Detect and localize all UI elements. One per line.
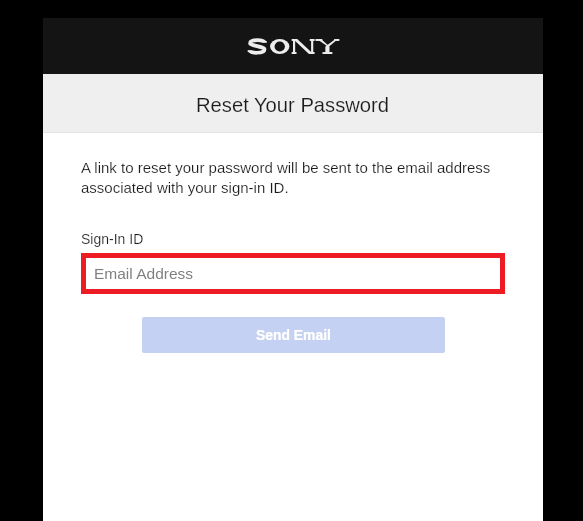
staticText: Send Email — [256, 327, 331, 343]
button[interactable]: Sony — [248, 39, 338, 54]
button[interactable]: Email Address — [86, 258, 500, 289]
button[interactable]: Send Email — [142, 317, 445, 353]
staticText: Sign-In ID — [81, 231, 144, 247]
staticText: A link to reset your password will be se… — [81, 159, 505, 197]
staticText: Email Address — [94, 265, 194, 282]
staticText: Reset Your Password — [196, 94, 390, 117]
